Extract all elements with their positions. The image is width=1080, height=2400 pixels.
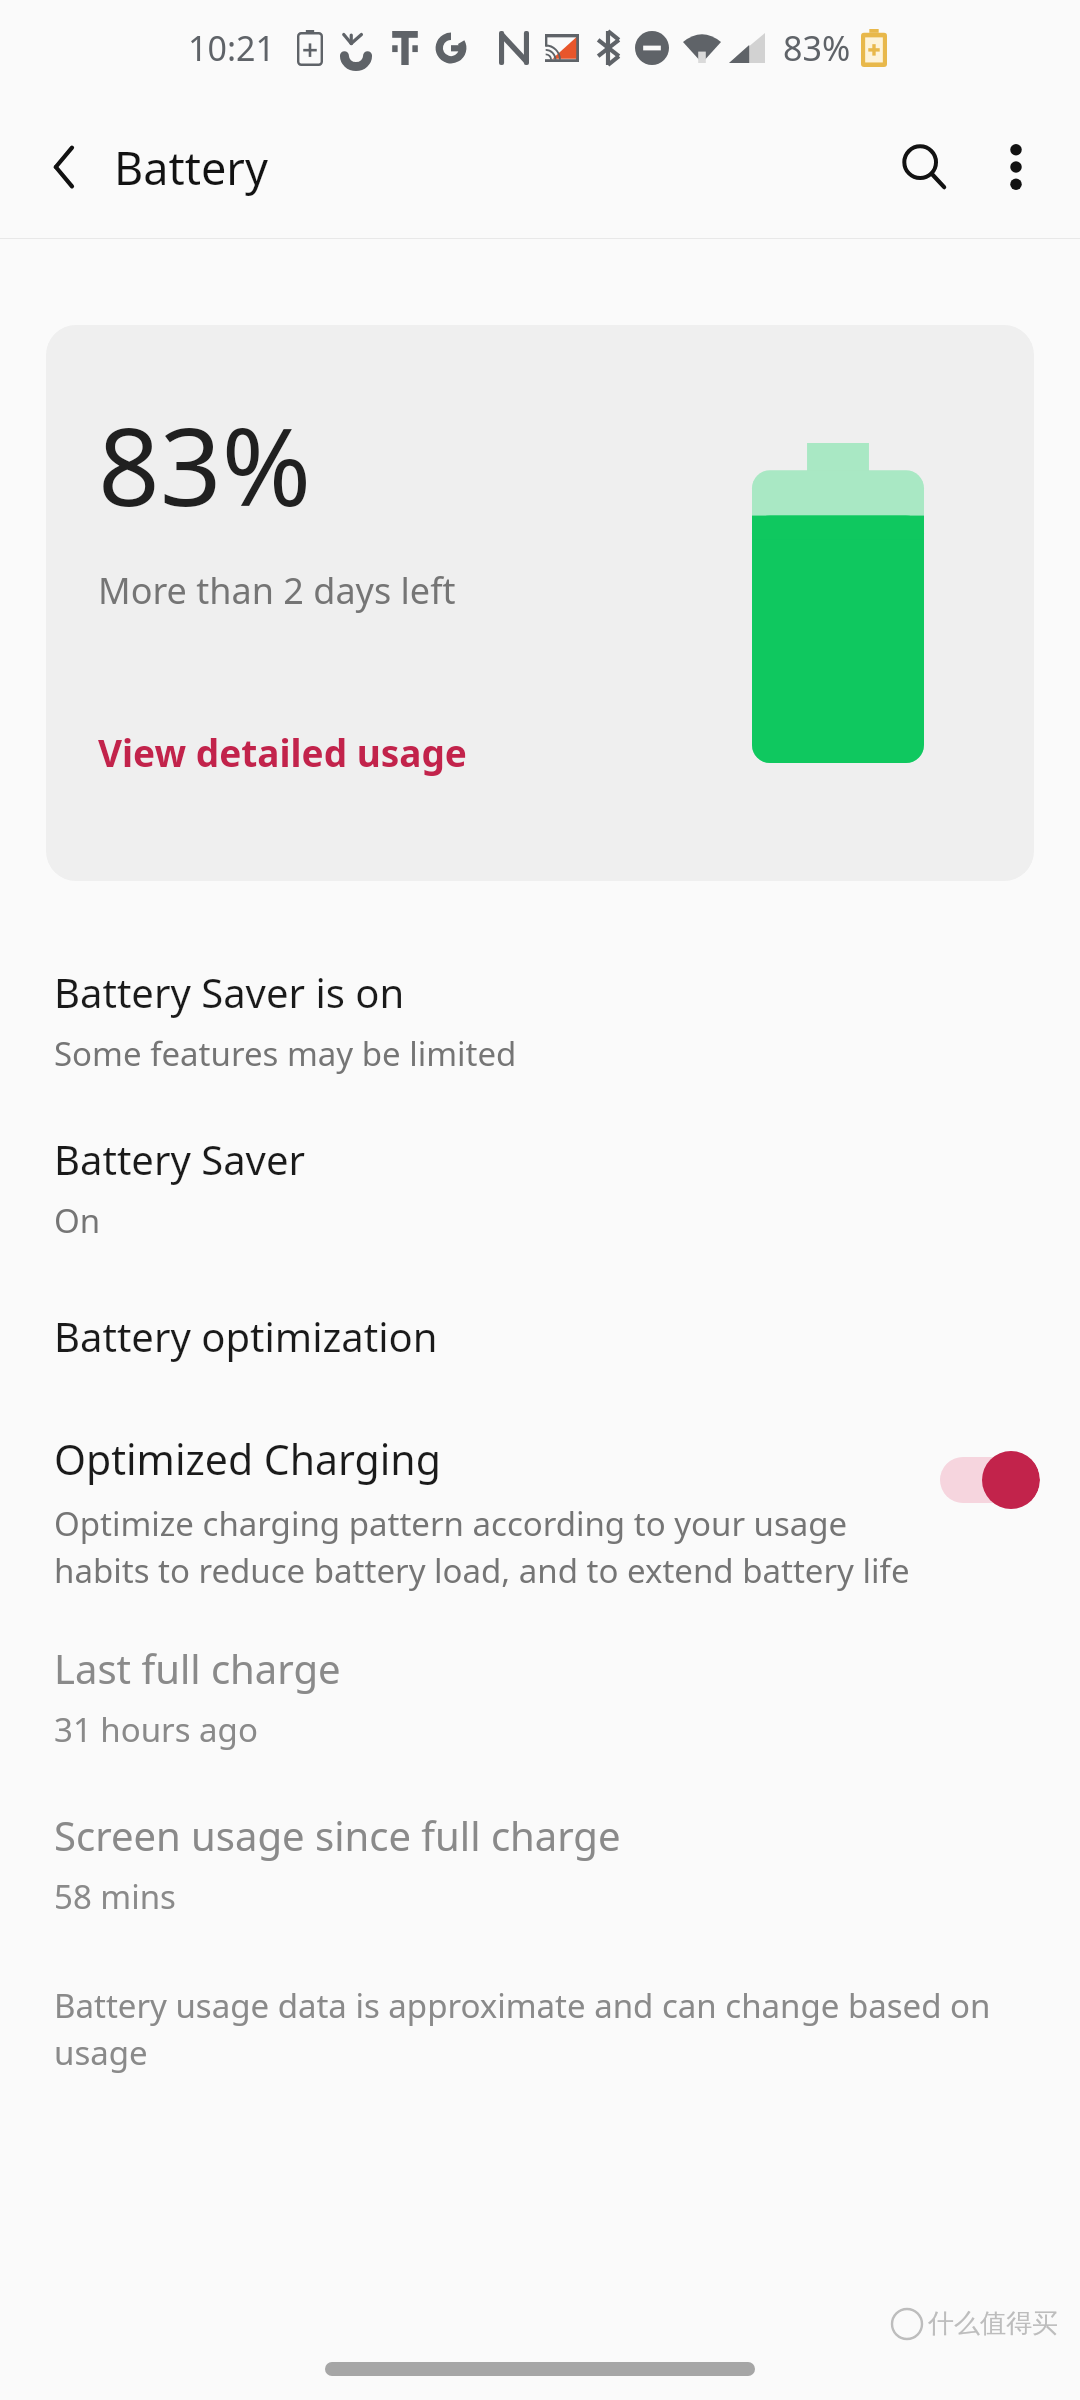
staticText: 58 mins [54,1874,176,1919]
staticText: 83% [98,391,312,538]
staticText: 10:21 [188,25,275,71]
button[interactable]: Battery Saver [0,1132,1080,1243]
staticText: 31 hours ago [54,1707,258,1752]
button[interactable]: Optimized Charging toggle [936,1449,1040,1511]
staticText: Battery Saver [54,1132,305,1186]
staticText: Optimized Charging [54,1431,441,1487]
staticText: On [54,1198,101,1243]
staticText: Battery optimization [54,1309,438,1363]
button[interactable]: Optimized Charging [0,1431,1080,1593]
staticText: Battery usage data is approximate and ca… [54,1983,1032,2075]
button[interactable]: Last full charge [0,1641,1080,1752]
staticText: Optimize charging pattern according to y… [54,1501,918,1593]
button[interactable]: Battery Saver is on [0,965,1080,1076]
staticText: 83% [783,25,851,71]
staticText: Battery [114,137,268,198]
staticText: Some features may be limited [54,1031,517,1076]
staticText: Battery Saver is on [54,965,405,1019]
button[interactable]: Search [876,119,972,215]
button[interactable]: Back [26,127,106,207]
staticText: More than 2 days left [98,566,456,615]
button[interactable]: More options [972,123,1060,211]
staticText: Last full charge [54,1641,341,1695]
staticText: 什么值得买 [928,2307,1058,2340]
button[interactable]: Battery optimization [0,1309,1080,1363]
staticText: Screen usage since full charge [54,1808,621,1862]
button[interactable]: 83% [46,325,1034,881]
staticText: View detailed usage [98,727,467,777]
button[interactable]: View detailed usage [90,723,475,781]
button[interactable]: Screen usage since full charge [0,1808,1080,1919]
